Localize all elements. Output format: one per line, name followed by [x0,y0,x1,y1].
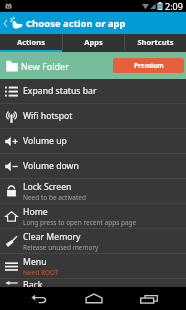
staticText: Premium [134,61,164,70]
button[interactable]: New Folder [0,52,186,79]
staticText: 2:09 [165,0,183,12]
staticText: New Folder [21,60,69,72]
button[interactable]: Home [0,204,186,228]
staticText: Apps [84,37,103,47]
button[interactable]: Back [0,279,186,287]
staticText: Shortcuts [137,37,174,47]
button[interactable]: Navigate up [0,12,186,34]
button[interactable]: Wifi hotspot [0,104,186,128]
button[interactable]: Back [11,287,66,310]
button[interactable]: Apps [63,34,124,50]
staticText: Clear Memory [23,231,81,243]
staticText: Menu [23,256,47,268]
button[interactable]: Shortcuts [125,34,186,50]
button[interactable]: Actions [0,34,62,50]
button[interactable]: Expand status bar [0,79,186,103]
button[interactable]: Menu [0,254,186,278]
other: Navigate up [3,18,8,29]
staticText: Wifi hotspot [23,110,73,122]
staticText: Expand status bar [23,85,97,97]
staticText: Long press to open recent apps page [23,218,137,227]
staticText: Choose action or app [26,17,126,30]
staticText: Need to be activated [23,193,87,202]
button[interactable]: Lock Screen [0,179,186,203]
button[interactable]: Home [66,287,121,310]
staticText: Volume down [23,160,79,172]
staticText: Lock Screen [23,181,72,193]
button[interactable]: Volume down [0,154,186,178]
button[interactable]: Clear Memory [0,229,186,253]
staticText: Release unused memory [23,243,99,252]
button[interactable]: Premium [113,58,184,73]
staticText: Volume up [23,135,67,147]
button[interactable]: Volume up [0,129,186,153]
staticText: Back [23,279,43,287]
staticText: Need ROOT [23,268,59,277]
staticText: Actions [17,37,45,47]
button[interactable]: Recent apps [121,287,176,310]
staticText: Home [23,206,48,218]
